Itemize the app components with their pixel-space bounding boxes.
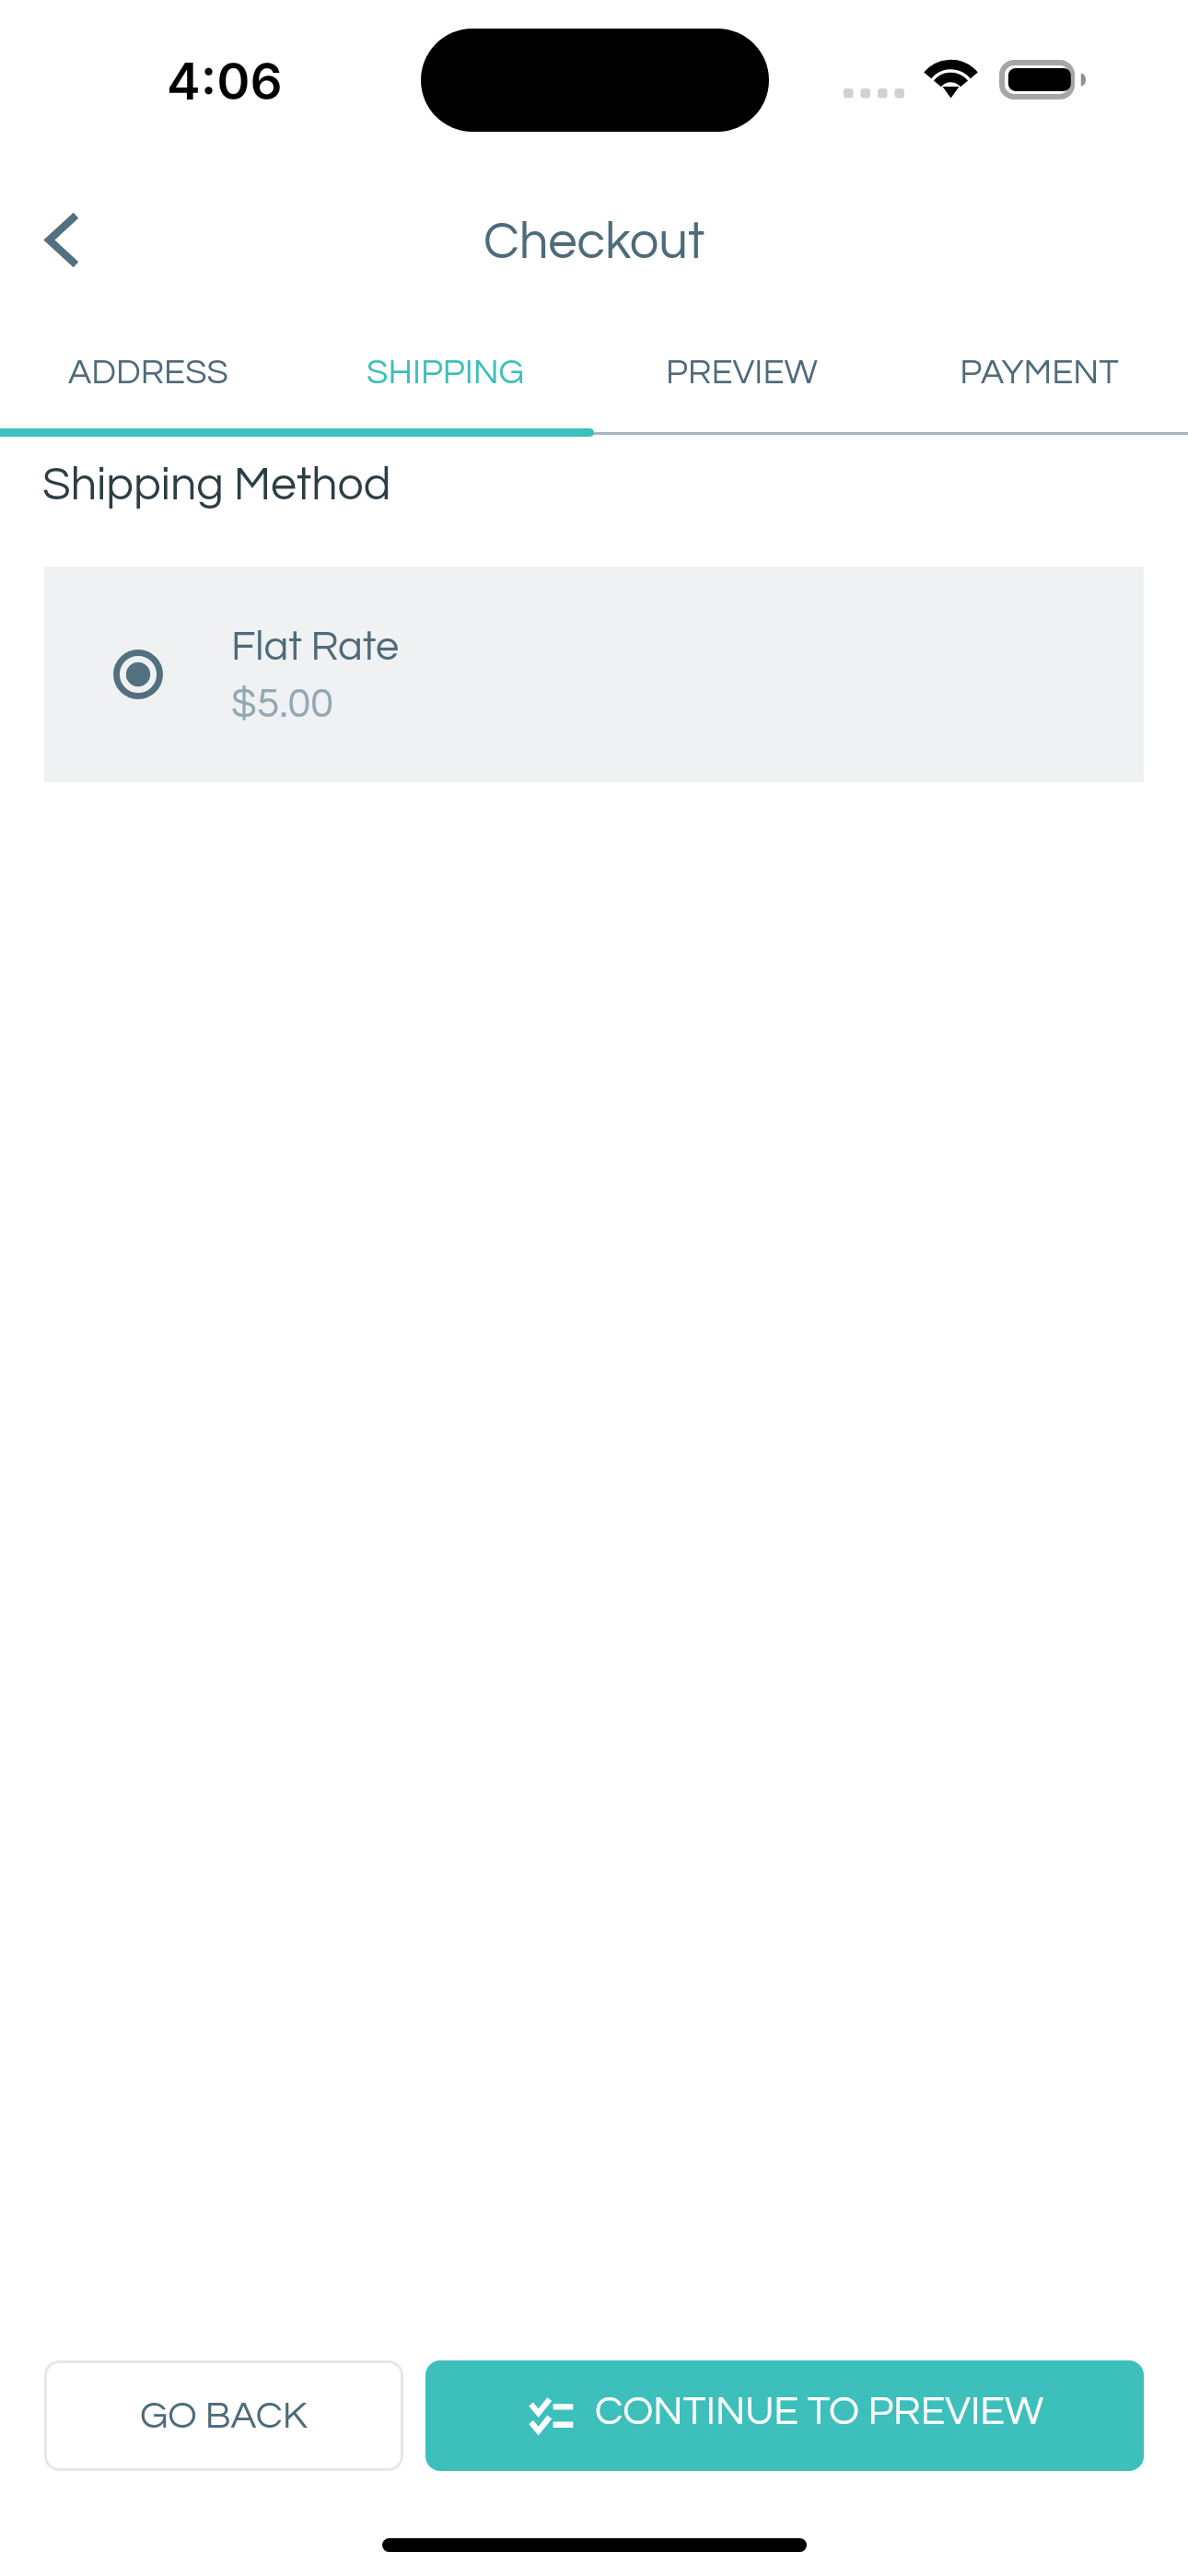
staticText: Shipping Method xyxy=(42,462,391,509)
button[interactable]: ADDRESS xyxy=(0,346,297,398)
button[interactable]: GO BACK xyxy=(44,2360,403,2471)
staticText: $5.00 xyxy=(231,683,334,725)
staticText: GO BACK xyxy=(140,2396,308,2436)
staticText: Checkout xyxy=(483,216,705,269)
staticText: ADDRESS xyxy=(68,355,228,391)
button[interactable]: Flat Rate xyxy=(44,567,1144,782)
button[interactable]: Back xyxy=(5,184,115,295)
staticText: 4:06 xyxy=(167,51,283,112)
staticText: Flat Rate xyxy=(231,626,400,668)
staticText: PREVIEW xyxy=(666,355,818,391)
button[interactable]: SHIPPING xyxy=(297,346,593,398)
button[interactable]: PREVIEW xyxy=(593,346,891,398)
button[interactable]: PAYMENT xyxy=(891,346,1188,398)
staticText: PAYMENT xyxy=(960,355,1119,391)
staticText: CONTINUE TO PREVIEW xyxy=(595,2391,1044,2432)
staticText: SHIPPING xyxy=(367,355,524,391)
button[interactable]: CONTINUE TO PREVIEW xyxy=(425,2360,1144,2471)
